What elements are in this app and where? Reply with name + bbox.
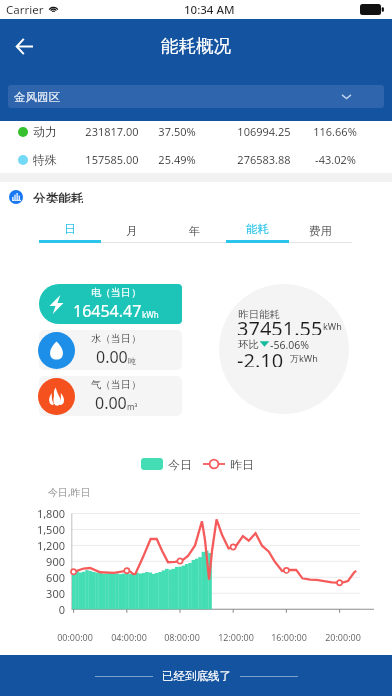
staticText: 电（当日） [91,286,141,299]
staticText: 10:34 AM [184,2,235,18]
staticText: 1,200 [0,538,65,553]
staticText: 昨日能耗 [238,308,280,319]
staticText: kWh [323,320,342,332]
staticText: 157585.00 [85,152,139,167]
staticText: 特殊 [33,152,57,167]
staticText: 水（当日） [91,332,141,345]
button[interactable]: 电（当日） [39,284,182,324]
staticText: 0.00 [96,346,128,368]
staticText: Carrier [6,2,44,18]
staticText: 16:00:00 [259,631,319,643]
staticText: 25.49% [158,152,196,167]
staticText: kWh [142,309,159,320]
staticText: 已经到底线了 [162,669,231,683]
staticText: 气（当日） [91,378,141,391]
staticText: 04:00:00 [99,631,159,643]
staticText: 16454.47 [73,300,142,322]
staticText: 276583.88 [237,152,291,167]
staticText: 环比 [238,338,259,349]
staticText: 231817.00 [85,124,139,139]
staticText: 0 [0,602,65,617]
staticText: 37.50% [158,124,196,139]
staticText: 能耗 [246,222,269,236]
button[interactable]: 能耗 [226,221,289,245]
button[interactable]: Back [6,28,42,64]
staticText: 20:00:00 [313,631,373,643]
staticText: 600 [0,570,65,585]
staticText: 106994.25 [237,124,291,139]
staticText: 月 [126,224,138,238]
staticText: 日 [64,222,76,236]
staticText: 37451.55 [237,315,323,335]
button[interactable]: 金风园区 [8,85,384,108]
staticText: 1,500 [0,522,65,537]
staticText: -2.10 [237,347,284,367]
staticText: -56.06% [270,338,309,349]
staticText: 费用 [309,224,332,238]
staticText: 动力 [33,124,57,139]
staticText: m³ [127,401,138,412]
button[interactable]: 年 [163,221,226,245]
button[interactable]: 费用 [289,221,352,245]
staticText: 万kWh [290,352,318,364]
button[interactable]: 日 [39,221,101,245]
staticText: 900 [0,554,65,569]
staticText: 116.66% [313,124,357,139]
staticText: 吨 [128,356,136,366]
button[interactable]: 月 [101,221,163,245]
staticText: 300 [0,586,65,601]
staticText: 分类能耗 [33,191,83,203]
button[interactable]: 水（当日） [39,330,182,370]
button[interactable]: 气（当日） [39,376,182,416]
staticText: 0.00 [95,392,127,414]
staticText: 昨日 [230,457,254,471]
staticText: 00:00:00 [45,631,105,643]
staticText: 能耗概况 [161,35,231,57]
staticText: 1,800 [0,506,65,521]
staticText: 今日,昨日 [48,485,91,499]
staticText: 今日 [168,457,192,471]
staticText: 08:00:00 [152,631,212,643]
staticText: 年 [189,224,201,238]
staticText: 12:00:00 [206,631,266,643]
staticText: -43.02% [315,152,356,167]
staticText: 金风园区 [14,90,60,104]
